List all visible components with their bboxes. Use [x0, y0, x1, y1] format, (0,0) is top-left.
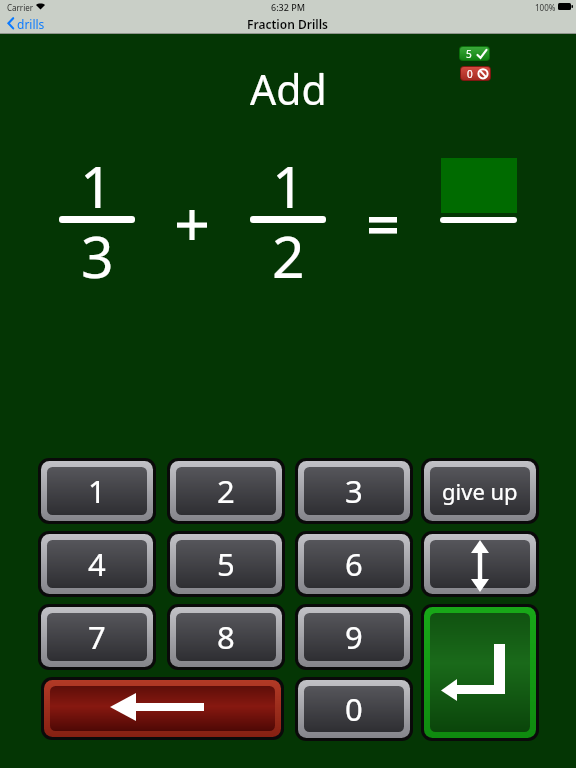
staticText: 6: [345, 543, 363, 585]
staticText: 5: [217, 543, 235, 585]
staticText: 8: [217, 616, 235, 658]
button[interactable]: [421, 604, 539, 741]
staticText: give up: [442, 476, 518, 506]
staticText: Add: [250, 61, 327, 117]
button[interactable]: 4: [38, 531, 156, 597]
staticText: drills: [17, 16, 45, 32]
staticText: 5: [466, 47, 472, 60]
staticText: 4: [88, 543, 106, 585]
button[interactable]: 3: [295, 458, 413, 524]
staticText: 6:32 PM: [271, 1, 305, 13]
staticText: 3: [81, 217, 114, 295]
button[interactable]: 7: [38, 604, 156, 670]
staticText: Carrier: [7, 2, 34, 13]
button[interactable]: drills: [6, 14, 66, 33]
staticText: 1: [272, 147, 305, 225]
staticText: 7: [88, 616, 106, 658]
button[interactable]: [421, 531, 539, 597]
staticText: 1: [80, 147, 113, 225]
button[interactable]: 9: [295, 604, 413, 670]
button[interactable]: 8: [167, 604, 285, 670]
button[interactable]: give up: [421, 458, 539, 524]
button[interactable]: 2: [167, 458, 285, 524]
staticText: 9: [345, 616, 363, 658]
button[interactable]: 5: [167, 531, 285, 597]
staticText: Fraction Drills: [247, 16, 329, 32]
staticText: 2: [272, 217, 305, 295]
staticText: 1: [88, 470, 106, 512]
staticText: 0: [467, 67, 473, 80]
button[interactable]: 1: [38, 458, 156, 524]
button[interactable]: 0: [295, 677, 413, 741]
staticText: 3: [345, 470, 363, 512]
staticText: 100%: [535, 2, 556, 13]
button[interactable]: [41, 677, 284, 740]
staticText: 2: [217, 470, 235, 512]
button[interactable]: 6: [295, 531, 413, 597]
staticText: 0: [345, 688, 363, 730]
